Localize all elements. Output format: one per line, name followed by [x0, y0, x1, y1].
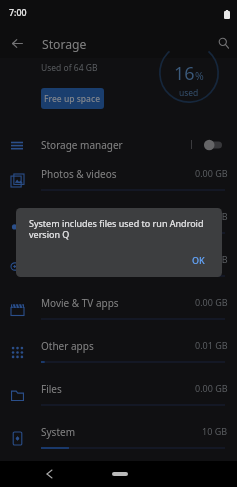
staticText: 16 — [174, 61, 195, 86]
button[interactable]: OK — [185, 251, 212, 269]
button[interactable]: Storage manager toggle — [204, 138, 222, 152]
staticText: 0.00 GB — [195, 167, 228, 179]
button[interactable]: Movie & TV apps — [0, 288, 237, 331]
staticText: Storage manager — [41, 138, 123, 152]
staticText: Free up space — [44, 93, 101, 105]
staticText: 0.00 GB — [195, 210, 228, 222]
staticText: Movie & TV apps — [41, 296, 119, 310]
staticText: Other apps — [41, 339, 94, 353]
staticText: % — [195, 69, 204, 83]
button[interactable]: Storage manager — [0, 130, 237, 159]
staticText: System includes files used to run Androi… — [29, 217, 208, 241]
button[interactable]: Home — [112, 472, 128, 476]
staticText: 10 GB — [202, 425, 228, 437]
button[interactable]: Other apps — [0, 331, 237, 374]
staticText: 0.00 GB — [195, 296, 228, 308]
button[interactable]: Search — [211, 30, 237, 56]
button[interactable]: Free up space — [41, 88, 104, 109]
staticText: System — [41, 425, 75, 439]
staticText: 0.00 GB — [195, 253, 228, 265]
button[interactable]: Games — [0, 245, 237, 288]
staticText: Files — [41, 382, 62, 396]
button[interactable]: Back — [3, 29, 31, 57]
button[interactable]: Photos & videos — [0, 159, 237, 202]
staticText: used — [179, 87, 199, 99]
staticText: 7:00 — [9, 7, 27, 19]
staticText: Used of 64 GB — [41, 62, 98, 74]
staticText: 0.00 GB — [195, 382, 228, 394]
staticText: 0.01 GB — [195, 339, 228, 351]
button[interactable]: Music & audio — [0, 202, 237, 245]
button[interactable]: Files — [0, 374, 237, 417]
staticText: Music & audio — [41, 210, 108, 224]
button[interactable]: Back — [39, 464, 59, 484]
staticText: OK — [192, 254, 205, 266]
button[interactable]: System — [0, 417, 237, 460]
staticText: Storage — [42, 36, 87, 53]
staticText: Photos & videos — [41, 167, 117, 181]
